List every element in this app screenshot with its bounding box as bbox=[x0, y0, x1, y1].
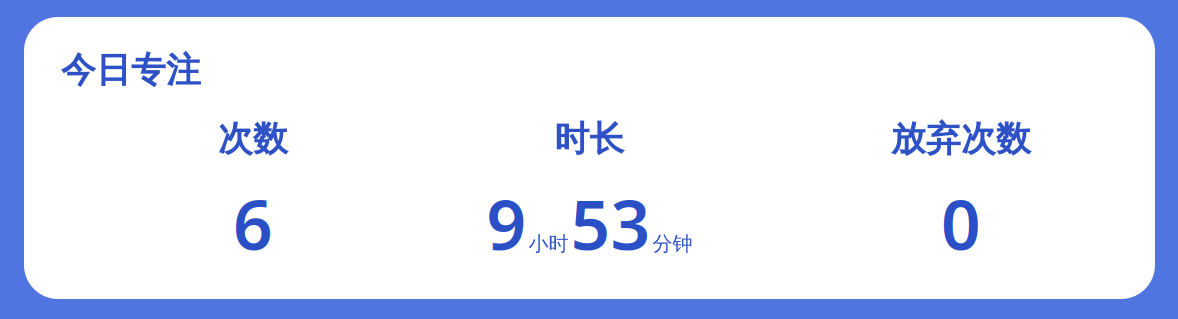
staticText: 小时 bbox=[528, 232, 568, 256]
staticText: 放弃次数 bbox=[891, 118, 1031, 160]
staticText: 今日专注 bbox=[61, 49, 201, 92]
staticText: 9 bbox=[486, 177, 526, 269]
staticText: 53 bbox=[570, 177, 650, 269]
staticText: 0 bbox=[941, 177, 981, 269]
staticText: 6 bbox=[233, 177, 273, 269]
staticText: 次数 bbox=[218, 118, 288, 160]
staticText: 分钟 bbox=[652, 232, 692, 256]
staticText: 时长 bbox=[554, 118, 624, 160]
button[interactable]: 今日专注 bbox=[24, 17, 1155, 299]
